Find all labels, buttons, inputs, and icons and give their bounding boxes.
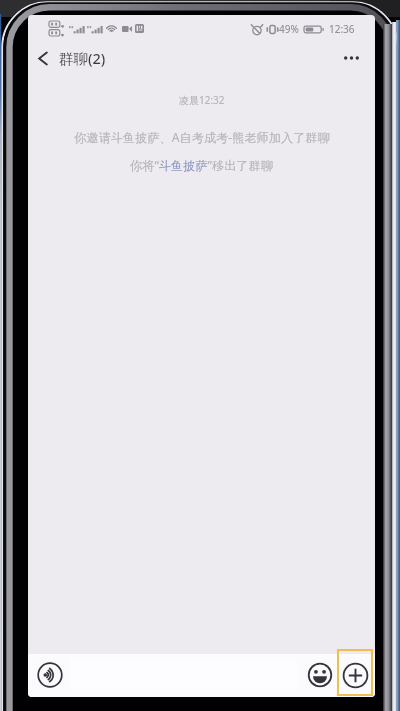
button[interactable]: Emoji (307, 662, 333, 688)
staticText: 你邀请斗鱼披萨、A自考成考-熊老师加入了群聊 (74, 129, 330, 146)
button[interactable]: Back (28, 44, 114, 72)
staticText: 12:36 (329, 22, 355, 36)
other: Back (37, 51, 49, 66)
staticText: 凌晨12:32 (179, 93, 225, 107)
staticText: 群聊(2) (59, 48, 106, 68)
button[interactable]: More options (332, 47, 375, 69)
button[interactable]: Voice input (37, 662, 63, 688)
button[interactable]: More functions (342, 662, 368, 688)
staticText: 49% (279, 22, 299, 36)
staticText: 你将“斗鱼披萨”移出了群聊 (130, 157, 273, 174)
